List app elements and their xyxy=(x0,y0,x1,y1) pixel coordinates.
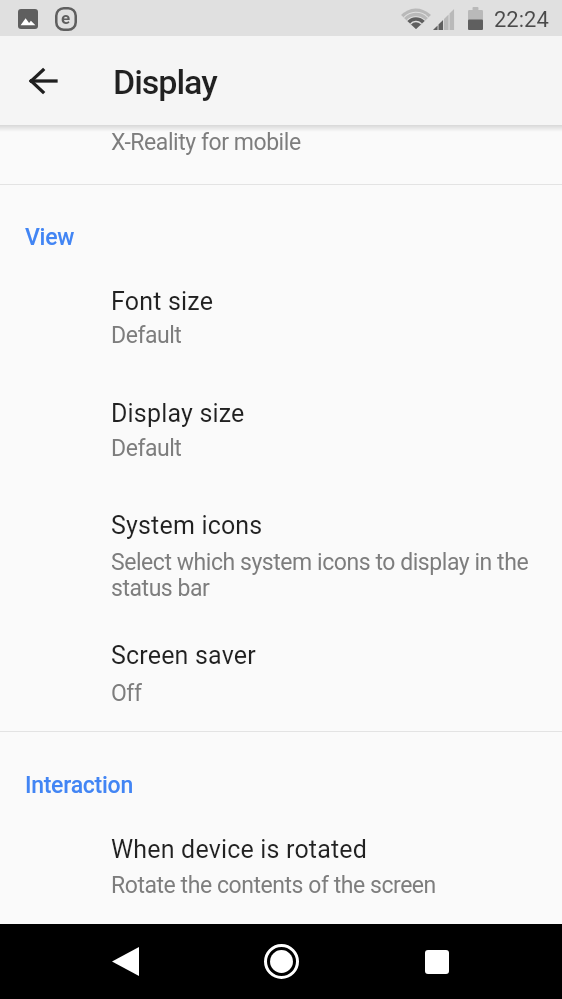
staticText: Font size xyxy=(111,287,214,316)
staticText: Select which system icons to display in … xyxy=(111,549,529,601)
button[interactable]: System icons xyxy=(0,489,562,620)
button[interactable]: X-Reality for mobile xyxy=(0,126,562,184)
staticText: Rotate the contents of the screen xyxy=(111,872,436,899)
staticText: X-Reality for mobile xyxy=(111,129,301,156)
button[interactable]: Back xyxy=(95,924,155,999)
staticText: Display size xyxy=(111,399,245,428)
button[interactable]: Navigate up xyxy=(14,52,72,110)
staticText: 22:24 xyxy=(494,7,549,33)
staticText: When device is rotated xyxy=(111,835,368,864)
other: Wi-Fi xyxy=(403,9,429,29)
staticText: Default xyxy=(111,435,182,462)
button[interactable]: Screen saver xyxy=(0,620,562,731)
other: Screenshot xyxy=(18,9,38,29)
other: Battery xyxy=(468,7,483,30)
button[interactable]: Recent apps xyxy=(407,924,467,999)
staticText: e xyxy=(61,8,71,28)
staticText: System icons xyxy=(111,511,263,540)
button[interactable]: Home xyxy=(251,924,311,999)
staticText: View xyxy=(25,224,75,251)
staticText: Display xyxy=(113,62,217,102)
other: Mobile signal xyxy=(433,8,455,30)
staticText: Off xyxy=(111,680,142,707)
button[interactable]: Display size xyxy=(0,377,562,489)
staticText: Screen saver xyxy=(111,641,256,670)
staticText: Default xyxy=(111,322,182,349)
button[interactable]: Font size xyxy=(0,265,562,377)
staticText: Interaction xyxy=(25,772,133,799)
button[interactable]: When device is rotated xyxy=(0,812,562,924)
